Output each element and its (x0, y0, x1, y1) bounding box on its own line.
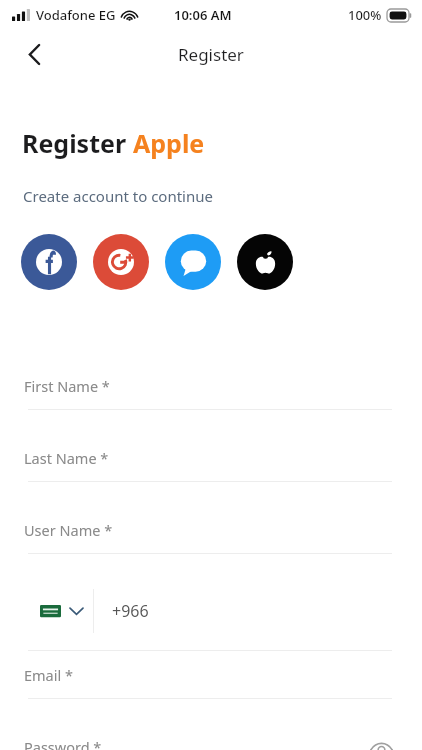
staticText: Password * (24, 737, 102, 750)
staticText: Register (22, 126, 133, 160)
staticText: Vodafone EG (36, 6, 116, 24)
button[interactable]: Last Name * (0, 434, 422, 506)
staticText: Last Name * (24, 448, 109, 468)
staticText: Register (178, 43, 244, 66)
button[interactable]: +966 (0, 578, 422, 651)
button[interactable]: Sign up with Messenger (165, 234, 221, 290)
staticText: 10:06 AM (174, 6, 232, 24)
button[interactable]: Sign up with Facebook (21, 234, 77, 290)
staticText: First Name * (24, 376, 110, 396)
button[interactable]: Sign up with Google (93, 234, 149, 290)
staticText: +966 (112, 600, 149, 622)
button[interactable]: Back (12, 32, 56, 76)
button[interactable]: First Name * (0, 362, 422, 434)
staticText: Create account to continue (23, 186, 213, 206)
staticText: 100% (348, 6, 382, 24)
button[interactable]: Password * (0, 723, 422, 750)
staticText: Apple (133, 126, 205, 160)
staticText: Email * (24, 665, 73, 685)
staticText: User Name * (24, 520, 113, 540)
button[interactable]: Email * (0, 651, 422, 723)
button[interactable]: Sign up with Apple (237, 234, 293, 290)
button[interactable]: User Name * (0, 506, 422, 578)
button[interactable]: Show password (368, 735, 394, 750)
